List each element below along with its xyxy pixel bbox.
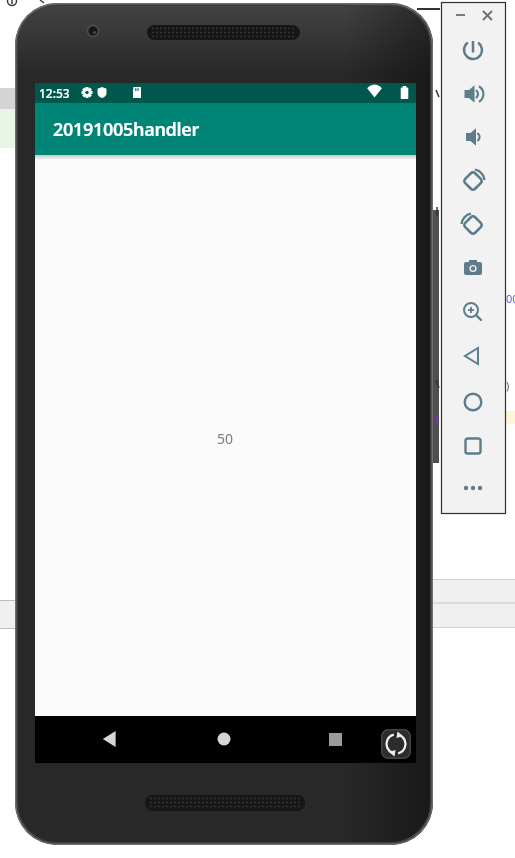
button[interactable]: [456, 164, 489, 197]
button[interactable]: [456, 33, 489, 66]
staticText: ): [506, 378, 510, 393]
button[interactable]: [456, 208, 489, 241]
staticText: 12:53: [39, 85, 70, 101]
button[interactable]: [456, 339, 489, 372]
button[interactable]: [456, 429, 489, 462]
button[interactable]: [456, 120, 489, 153]
button[interactable]: [315, 719, 355, 759]
staticText: 00: [506, 291, 515, 306]
button[interactable]: [456, 471, 489, 504]
staticText: 50: [217, 429, 234, 448]
button[interactable]: [204, 719, 244, 759]
button[interactable]: [456, 385, 489, 418]
button[interactable]: [456, 251, 489, 284]
button[interactable]: [456, 295, 489, 328]
button[interactable]: [381, 729, 411, 759]
button[interactable]: [456, 77, 489, 110]
button[interactable]: [90, 719, 130, 759]
staticText: 20191005handler: [53, 117, 200, 142]
